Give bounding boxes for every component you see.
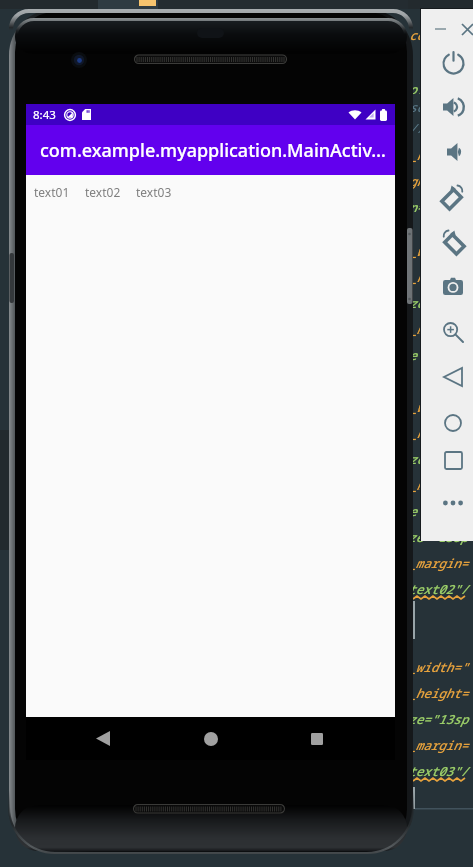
button[interactable]: Zoom in — [421, 315, 473, 349]
staticText: _h — [409, 425, 425, 442]
staticText: ze — [409, 295, 425, 312]
button[interactable]: text02 — [85, 184, 121, 200]
staticText: _margin= — [408, 737, 469, 754]
staticText: text02"/ — [408, 581, 469, 598]
button[interactable]: Rotate right — [421, 224, 473, 258]
staticText: _m — [409, 477, 425, 494]
button[interactable]: Minimize — [427, 17, 453, 41]
staticText: ze="13sp — [408, 711, 469, 728]
staticText: _height= — [408, 685, 469, 702]
button[interactable]: More options — [421, 486, 473, 520]
button[interactable]: Back — [421, 360, 473, 394]
button[interactable]: Home — [189, 717, 232, 760]
staticText: ze="13sp — [408, 529, 469, 546]
staticText: gh — [409, 173, 425, 190]
staticText: _margin= — [408, 555, 469, 572]
button[interactable]: Volume up — [421, 90, 473, 124]
staticText: _w — [409, 399, 425, 416]
staticText: text03"/ — [408, 763, 469, 780]
staticText: _h — [409, 147, 425, 164]
button[interactable]: Back — [81, 717, 124, 760]
button[interactable]: Volume down — [421, 135, 473, 169]
button[interactable]: text03 — [136, 184, 172, 200]
staticText: // — [409, 120, 425, 137]
staticText: com.example.myapplication.MainActiv… — [40, 138, 386, 163]
staticText: text01 — [34, 184, 70, 200]
button[interactable]: Close — [454, 17, 473, 41]
button[interactable]: Recent apps — [295, 717, 338, 760]
button[interactable]: Screenshot — [421, 269, 473, 303]
staticText: _m — [409, 321, 425, 338]
button[interactable]: text01 — [34, 184, 70, 200]
button[interactable]: Overview — [421, 443, 473, 477]
staticText: e" — [409, 347, 425, 364]
staticText: n= — [409, 199, 425, 216]
staticText: _h — [409, 269, 425, 286]
staticText: _w — [409, 243, 425, 260]
staticText: _width=" — [408, 659, 469, 676]
staticText: text03 — [136, 184, 172, 200]
staticText: co — [409, 27, 425, 44]
button[interactable]: Rotate left — [421, 179, 473, 213]
staticText: e" — [409, 503, 425, 520]
staticText: text02 — [85, 184, 121, 200]
staticText: o: — [409, 81, 425, 98]
staticText: ze — [409, 451, 425, 468]
staticText: 8:43 — [33, 107, 56, 123]
staticText: so — [409, 99, 425, 116]
button[interactable]: Power — [421, 45, 473, 79]
button[interactable]: Home — [421, 406, 473, 440]
